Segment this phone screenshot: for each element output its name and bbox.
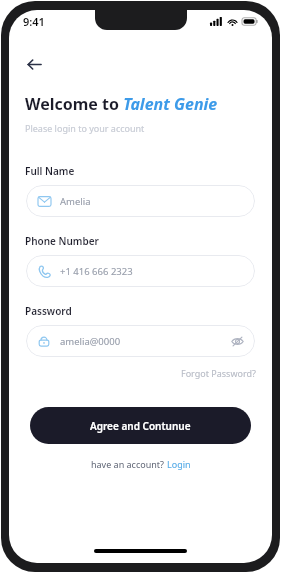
- staticText: 9:41: [23, 14, 45, 29]
- button[interactable]: Phone: [26, 255, 255, 287]
- button[interactable]: Agree and Contunue: [30, 407, 251, 444]
- staticText: amelia@0000: [60, 335, 121, 348]
- staticText: +1 416 666 2323: [60, 265, 133, 278]
- staticText: Forgot Password?: [181, 367, 256, 379]
- staticText: Password: [25, 304, 72, 318]
- button[interactable]: Back: [17, 47, 51, 81]
- button[interactable]: Email: [26, 185, 255, 217]
- staticText: Phone Number: [25, 234, 99, 248]
- staticText: Full Name: [25, 164, 75, 178]
- other: Password: [37, 334, 51, 348]
- button[interactable]: Toggle password visibility: [230, 334, 244, 348]
- staticText: Login: [167, 458, 191, 470]
- staticText: Agree and Contunue: [90, 419, 191, 433]
- staticText: Please login to your account: [25, 122, 145, 134]
- staticText: have an account?: [91, 458, 167, 470]
- button[interactable]: Forgot Password?: [181, 367, 256, 379]
- button[interactable]: Password: [26, 325, 255, 357]
- staticText: Welcome to Talent Genie: [25, 93, 218, 115]
- other: Email: [37, 194, 51, 208]
- staticText: Amelia: [60, 195, 91, 208]
- other: Phone: [37, 264, 51, 278]
- button[interactable]: Login: [167, 458, 191, 470]
